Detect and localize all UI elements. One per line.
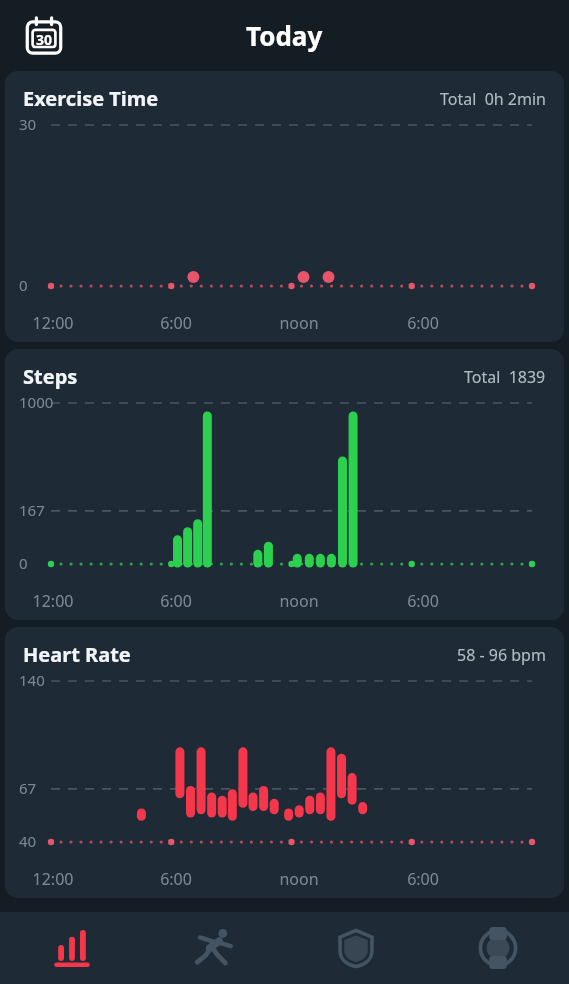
staticText: noon bbox=[267, 868, 331, 890]
button[interactable]: Watch bbox=[427, 912, 569, 984]
button[interactable]: Calendar bbox=[22, 14, 66, 58]
staticText: Today bbox=[246, 18, 323, 53]
staticText: 1000 bbox=[19, 392, 54, 412]
staticText: 30 bbox=[19, 114, 37, 134]
button[interactable]: Heart Rate bbox=[5, 627, 564, 898]
button[interactable]: Safety bbox=[285, 912, 427, 984]
staticText: 140 bbox=[19, 670, 45, 690]
staticText: 6:00 bbox=[391, 590, 455, 612]
staticText: Total 0h 2min bbox=[440, 88, 546, 110]
staticText: 67 bbox=[19, 778, 37, 798]
staticText: 6:00 bbox=[391, 312, 455, 334]
staticText: noon bbox=[267, 590, 331, 612]
staticText: 6:00 bbox=[144, 312, 208, 334]
button[interactable]: Steps bbox=[5, 349, 564, 620]
button[interactable]: Workout bbox=[143, 912, 285, 984]
staticText: 12:00 bbox=[21, 312, 85, 334]
staticText: 40 bbox=[19, 831, 37, 851]
staticText: 6:00 bbox=[144, 590, 208, 612]
staticText: Exercise Time bbox=[23, 85, 159, 112]
staticText: 12:00 bbox=[21, 868, 85, 890]
staticText: 167 bbox=[19, 500, 45, 520]
staticText: noon bbox=[267, 312, 331, 334]
staticText: 6:00 bbox=[391, 868, 455, 890]
staticText: Steps bbox=[23, 363, 78, 390]
staticText: 58 - 96 bpm bbox=[457, 644, 546, 666]
button[interactable]: Exercise Time bbox=[5, 71, 564, 342]
staticText: 0 bbox=[19, 275, 28, 295]
staticText: 6:00 bbox=[144, 868, 208, 890]
staticText: 12:00 bbox=[21, 590, 85, 612]
staticText: Total 1839 bbox=[464, 366, 546, 388]
staticText: 0 bbox=[19, 553, 28, 573]
button[interactable]: Activity charts bbox=[0, 912, 143, 984]
staticText: Heart Rate bbox=[23, 641, 131, 668]
staticText: 30 bbox=[36, 30, 53, 49]
